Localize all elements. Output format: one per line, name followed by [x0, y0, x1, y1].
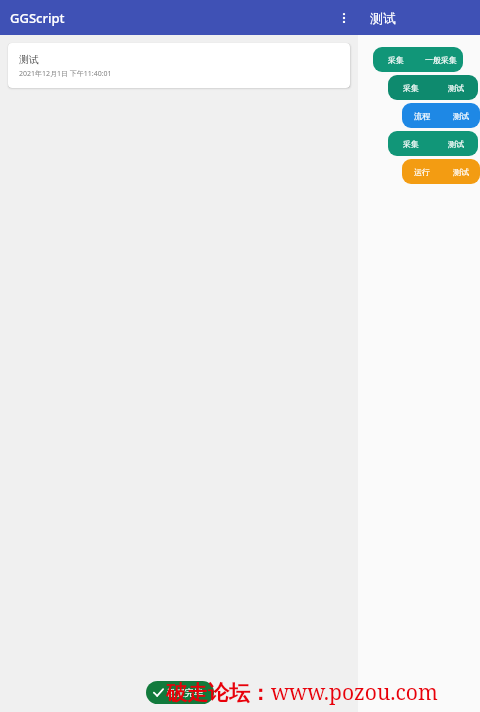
staticText: 采集 — [403, 139, 419, 149]
staticText: 测试 — [453, 111, 469, 121]
staticText: 2021年12月1日 下午11:40:01 — [19, 69, 112, 79]
staticText: 一般采集 — [425, 55, 457, 65]
staticText: 测试 — [453, 167, 469, 177]
button[interactable]: More options — [332, 6, 356, 30]
button[interactable]: 采集 — [373, 47, 463, 72]
button[interactable]: 测试 — [370, 10, 396, 26]
staticText: 运行 — [414, 167, 430, 177]
staticText: 采集 — [388, 55, 404, 65]
button[interactable]: 采集 — [388, 131, 478, 156]
staticText: 设置完毕 — [167, 687, 203, 698]
button[interactable]: 测试 — [8, 43, 350, 88]
button[interactable]: 设置完毕 — [146, 681, 214, 704]
staticText: 采集 — [403, 83, 419, 93]
staticText: www.pozou.com — [271, 678, 438, 707]
button[interactable]: 流程 — [402, 103, 480, 128]
button[interactable]: 运行 — [402, 159, 480, 184]
staticText: 流程 — [414, 111, 430, 121]
staticText: 测试 — [19, 53, 39, 66]
staticText: 测试 — [448, 83, 464, 93]
button[interactable]: 采集 — [388, 75, 478, 100]
staticText: 测试 — [448, 139, 464, 149]
staticText: GGScript — [10, 9, 65, 27]
staticText: 破走论坛： — [166, 680, 271, 706]
